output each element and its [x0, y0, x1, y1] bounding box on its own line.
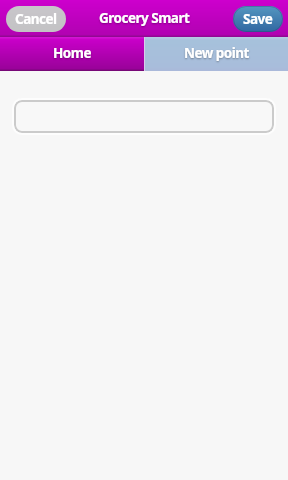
- staticText: Home: [53, 44, 91, 62]
- button[interactable]: Save: [233, 6, 283, 32]
- staticText: New point: [184, 44, 249, 62]
- staticText: Save: [243, 10, 273, 28]
- button[interactable]: Home: [0, 37, 144, 71]
- button[interactable]: Search: [14, 100, 274, 133]
- staticText: Cancel: [15, 10, 57, 28]
- button[interactable]: Cancel: [6, 6, 66, 32]
- staticText: Grocery Smart: [99, 9, 190, 27]
- button[interactable]: New point: [144, 37, 288, 71]
